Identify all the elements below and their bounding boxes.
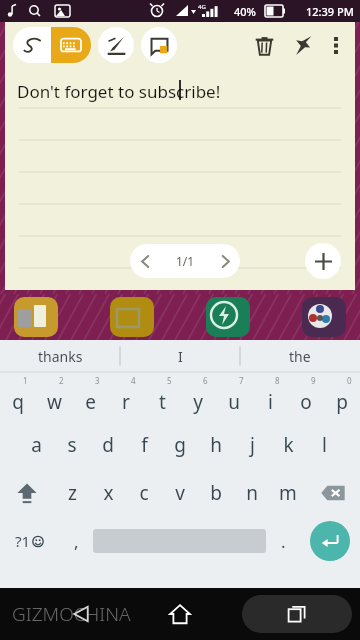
button[interactable]: 8 [252,373,288,421]
button[interactable]: App [302,297,346,337]
staticText: GIZMOCHINA [12,601,131,627]
staticText: I [178,347,183,366]
staticText: the [289,347,311,366]
button[interactable]: Add page [305,243,341,279]
staticText: r [122,389,130,415]
button[interactable]: x [90,469,126,517]
staticText: s [67,432,77,458]
button[interactable]: Insert image [141,27,177,63]
button[interactable]: c [126,469,162,517]
staticText: o [300,389,312,415]
staticText: 0 [347,375,352,386]
staticText: e [85,389,96,415]
button[interactable]: 1 [0,373,36,421]
button[interactable]: the [240,340,360,372]
button[interactable]: v [162,469,198,517]
staticText: 40% [234,4,256,19]
button[interactable]: 4 [108,373,144,421]
staticText: m [279,480,297,506]
staticText: x [103,480,114,506]
staticText: j [250,432,255,458]
button[interactable]: k [270,421,306,469]
staticText: 7 [239,375,244,386]
staticText: p [336,389,348,415]
button[interactable]: Handwriting [13,27,51,63]
button[interactable]: b [198,469,234,517]
staticText: c [139,480,149,506]
button[interactable]: g [162,421,198,469]
button[interactable]: App [206,297,250,337]
button[interactable]: I [120,340,240,372]
staticText: 12:39 PM [306,4,354,19]
button[interactable]: z [54,469,90,517]
button[interactable]: App [14,297,58,337]
staticText: a [31,432,42,458]
button[interactable]: 3 [72,373,108,421]
button[interactable]: 0 [324,373,360,421]
button[interactable]: Back [62,594,102,634]
button[interactable]: 2 [36,373,72,421]
staticText: t [159,389,166,415]
staticText: y [193,389,203,415]
staticText: , [74,530,79,553]
button[interactable]: 5 [144,373,180,421]
button[interactable]: 9 [288,373,324,421]
button[interactable]: , [59,517,93,565]
button[interactable]: h [198,421,234,469]
button[interactable]: n [234,469,270,517]
button[interactable]: Recents [242,595,352,633]
button[interactable]: . [266,517,300,565]
staticText: 6 [203,375,208,386]
button[interactable]: d [90,421,126,469]
button[interactable]: 6 [180,373,216,421]
staticText: 3 [95,375,100,386]
button[interactable]: Draw [98,27,134,63]
button[interactable]: More options [321,30,351,60]
staticText: 1/1 [176,253,195,269]
staticText: v [175,480,185,506]
button[interactable]: thanks [0,340,120,372]
button[interactable]: f [126,421,162,469]
staticText: thanks [38,347,83,366]
button[interactable]: s [54,421,90,469]
button[interactable]: j [234,421,270,469]
staticText: 2 [59,375,64,386]
button[interactable]: Enter [310,521,350,561]
staticText: 8 [275,375,280,386]
staticText: g [174,432,186,458]
button[interactable]: Keyboard [51,27,91,63]
button[interactable]: m [270,469,306,517]
button[interactable]: Home [160,594,200,634]
button[interactable]: 7 [216,373,252,421]
staticText: 1 [23,375,28,386]
staticText: 9 [311,375,316,386]
staticText: Don't forget to subscribe! [17,80,221,103]
staticText: . [281,530,286,553]
button[interactable]: 1/1 [130,244,240,278]
button[interactable]: a [18,421,54,469]
button[interactable]: Delete [245,26,283,64]
button[interactable]: Shift [0,469,54,517]
button[interactable]: l [306,421,342,469]
staticText: u [228,389,240,415]
staticText: f [141,432,148,458]
staticText: h [210,432,222,458]
staticText: d [102,432,114,458]
staticText: w [47,389,62,415]
staticText: ?1 [15,531,31,551]
staticText: l [322,432,327,458]
staticText: 4 [131,375,136,386]
staticText: b [210,480,222,506]
button[interactable]: Backspace [306,469,360,517]
staticText: q [12,389,24,415]
button[interactable]: Pin [283,26,321,64]
staticText: 4G [198,3,206,11]
staticText: 5 [167,375,172,386]
button[interactable]: Symbols and emoji [0,517,59,565]
staticText: i [268,389,273,415]
button[interactable]: App [110,297,154,337]
staticText: k [283,432,294,458]
staticText: z [68,480,77,506]
staticText: n [246,480,258,506]
